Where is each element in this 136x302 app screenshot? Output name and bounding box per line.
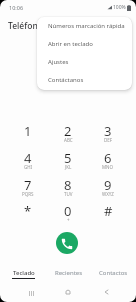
staticText: MNO <box>102 164 114 170</box>
staticText: ABC <box>64 137 73 143</box>
staticText: WXYZ <box>102 191 114 197</box>
staticText: Recientes <box>55 269 83 277</box>
button[interactable]: Teclado <box>0 266 46 282</box>
staticText: PQRS <box>22 191 34 197</box>
button[interactable]: 9 <box>88 176 128 198</box>
button[interactable]: Recientes <box>23 285 39 301</box>
button[interactable]: Inicio <box>60 284 76 300</box>
button[interactable]: 5 <box>48 149 88 171</box>
staticText: 8 <box>64 176 72 194</box>
button[interactable]: Llamar <box>56 232 78 254</box>
staticText: Contáctanos <box>48 76 84 84</box>
staticText: 3 <box>104 122 112 140</box>
staticText: 1 <box>24 122 32 140</box>
button[interactable]: Ajustes <box>37 53 132 71</box>
staticText: * <box>24 202 32 220</box>
staticText: 5 <box>64 149 72 167</box>
button[interactable]: 1 <box>8 122 48 144</box>
button[interactable]: Contáctanos <box>37 71 132 89</box>
button[interactable]: 8 <box>48 176 88 198</box>
button[interactable]: 3 <box>88 122 128 144</box>
button[interactable]: # <box>88 202 128 224</box>
staticText: 100% <box>113 4 126 11</box>
staticText: 7 <box>24 176 32 194</box>
button[interactable]: 4 <box>8 149 48 171</box>
staticText: Ajustes <box>48 58 69 66</box>
button[interactable]: Abrir en teclado <box>37 35 132 53</box>
staticText: GHI <box>24 164 33 170</box>
staticText: Números marcación rápida <box>48 22 125 30</box>
staticText: 4 <box>24 149 32 167</box>
staticText: + <box>67 217 70 223</box>
staticText: Abrir en teclado <box>48 40 93 48</box>
staticText: 6 <box>104 149 112 167</box>
staticText: Contactos <box>99 269 128 277</box>
button[interactable]: 7 <box>8 176 48 198</box>
staticText: 10:06 <box>9 4 24 11</box>
staticText: 0 <box>64 202 72 220</box>
button[interactable]: Contactos <box>91 266 136 282</box>
staticText: Teclado <box>13 269 35 277</box>
button[interactable]: 2 <box>48 122 88 144</box>
staticText: 2 <box>64 122 72 140</box>
staticText: 9 <box>104 176 112 194</box>
button[interactable]: * <box>8 202 48 224</box>
button[interactable]: Números marcación rápida <box>37 17 132 35</box>
staticText: Teléfono <box>8 20 43 32</box>
button[interactable]: 0 <box>48 202 88 224</box>
staticText: TUV <box>64 191 73 197</box>
button[interactable]: Atrás <box>98 284 114 300</box>
button[interactable]: Recientes <box>46 266 91 282</box>
button[interactable]: 6 <box>88 149 128 171</box>
staticText: JKL <box>65 164 72 170</box>
staticText: DEF <box>104 137 113 143</box>
staticText: # <box>104 202 113 220</box>
